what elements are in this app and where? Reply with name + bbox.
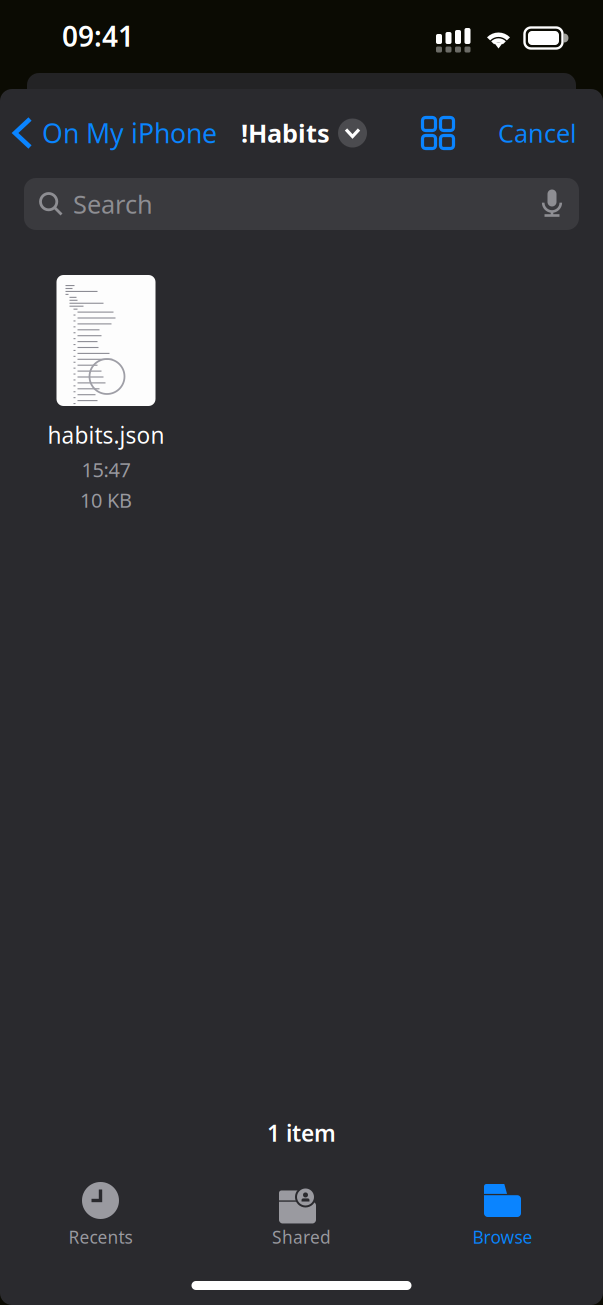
button[interactable]: Recents [0, 1179, 201, 1251]
button[interactable]: Search [24, 178, 579, 230]
staticText: Shared [272, 1225, 331, 1248]
staticText: 10 KB [80, 487, 132, 513]
staticText: !Habits [241, 116, 330, 150]
staticText: On My iPhone [42, 115, 217, 151]
staticText: Search [73, 187, 153, 221]
button[interactable]: On My iPhone [0, 115, 217, 151]
staticText: habits.json [47, 420, 164, 450]
staticText: Recents [68, 1225, 132, 1248]
button[interactable]: Cancel [498, 116, 603, 150]
staticText: Cancel [498, 116, 577, 150]
staticText: 1 item [267, 1118, 336, 1148]
button[interactable]: Browse [402, 1179, 603, 1251]
button[interactable]: Grid view [421, 116, 455, 150]
staticText: 15:47 [81, 456, 130, 483]
staticText: Browse [472, 1225, 532, 1248]
staticText: 09:41 [62, 17, 134, 55]
button[interactable]: Shared [201, 1179, 402, 1251]
button[interactable]: habits.json [31, 275, 181, 513]
button[interactable]: !Habits [241, 116, 367, 150]
